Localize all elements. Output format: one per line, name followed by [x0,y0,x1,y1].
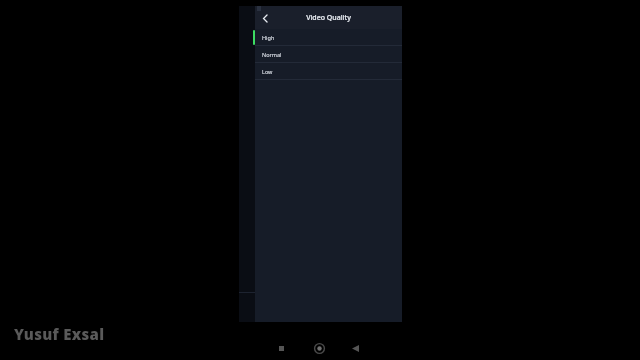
button[interactable]: Low [255,63,402,79]
button[interactable]: Recent apps [274,341,288,355]
button[interactable]: Back [255,8,275,28]
staticText: Low [262,68,273,75]
staticText: Normal [262,51,282,58]
button[interactable]: Normal [255,46,402,62]
staticText: Video Quality [306,13,351,23]
button[interactable]: Back [348,341,362,355]
staticText: Yusuf Exsal [14,324,105,344]
staticText: High [262,34,275,41]
button[interactable]: Home [311,340,327,356]
button[interactable]: High [255,29,402,45]
